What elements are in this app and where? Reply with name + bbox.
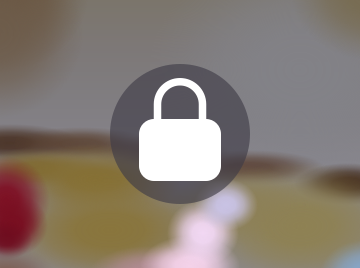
button[interactable]: Locked	[110, 64, 250, 204]
